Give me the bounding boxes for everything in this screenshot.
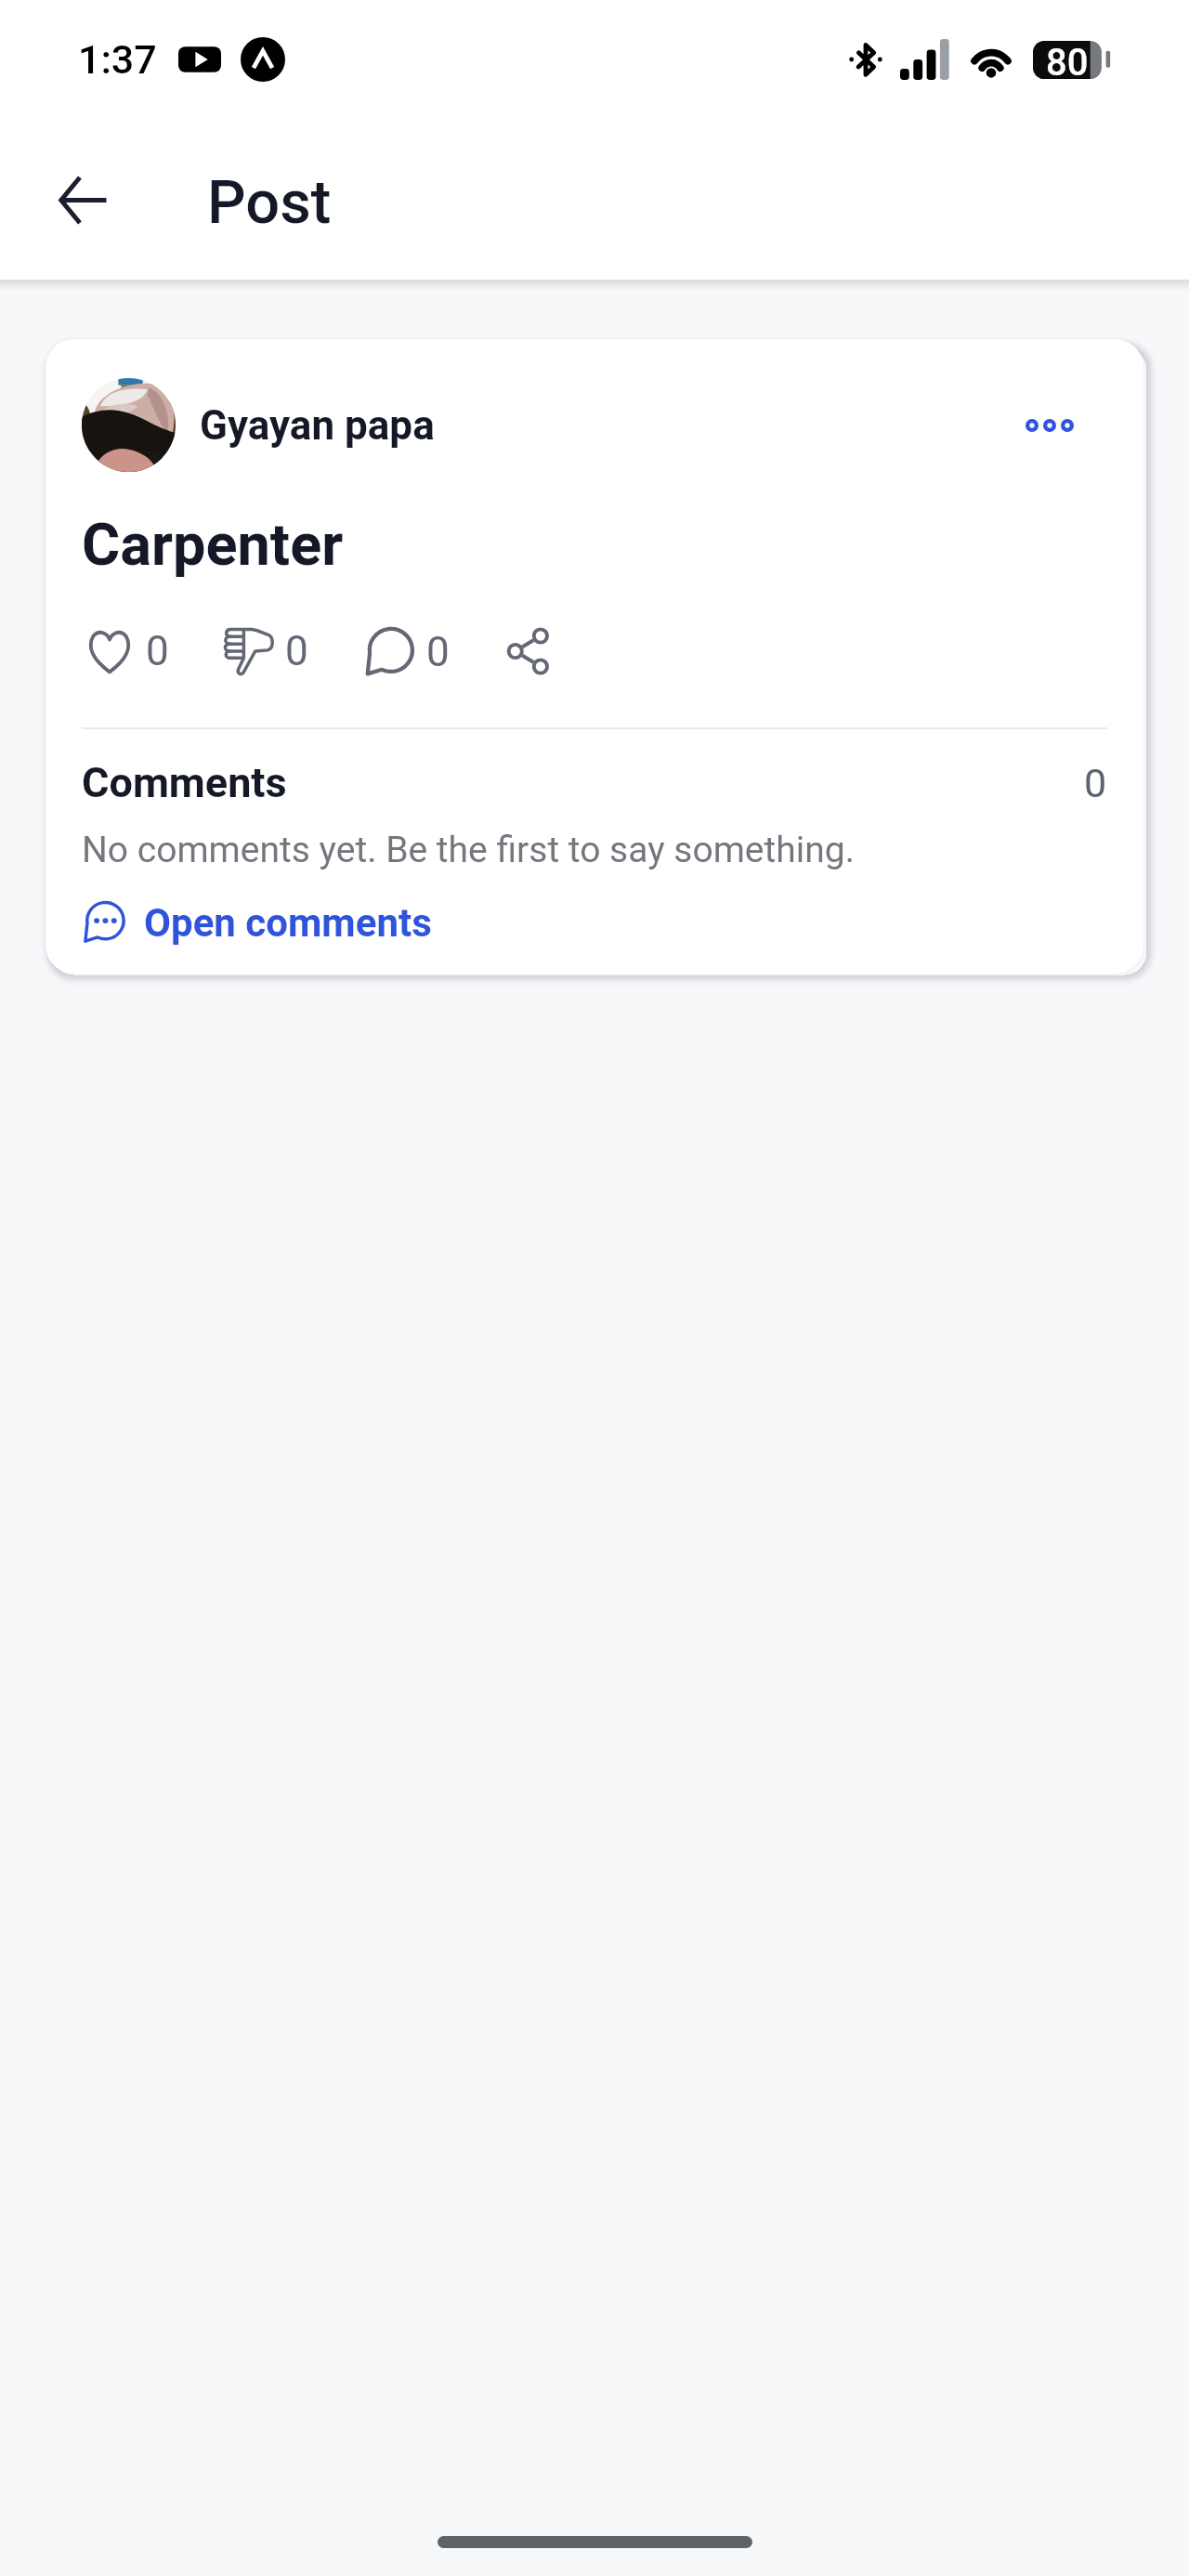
- button[interactable]: Open comments: [76, 896, 443, 949]
- staticText: No comments yet. Be the first to say som…: [82, 829, 855, 871]
- button[interactable]: 0: [217, 620, 314, 683]
- staticText: Carpenter: [82, 511, 344, 580]
- staticText: Gyayan papa: [200, 401, 435, 450]
- button[interactable]: Share: [502, 622, 555, 680]
- staticText: 0: [426, 628, 450, 676]
- staticText: 80: [1046, 41, 1089, 79]
- staticText: 0: [1084, 760, 1107, 806]
- staticText: Open comments: [144, 900, 432, 946]
- staticText: 0: [146, 627, 169, 675]
- button[interactable]: 0: [80, 621, 175, 681]
- button[interactable]: Profile photo: [82, 378, 176, 472]
- staticText: Comments: [82, 758, 287, 807]
- staticText: Post: [207, 167, 332, 238]
- button[interactable]: More options: [1010, 386, 1090, 465]
- staticText: 1:37: [78, 36, 157, 83]
- button[interactable]: 0: [359, 621, 455, 682]
- staticText: 0: [285, 627, 308, 675]
- button[interactable]: Back: [34, 151, 131, 248]
